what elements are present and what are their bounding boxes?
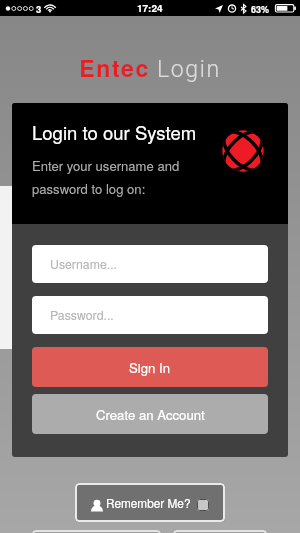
staticText: Login to our System [32, 119, 197, 146]
button[interactable]: Password... [32, 296, 268, 334]
staticText: Enter your username and [32, 156, 180, 175]
staticText: Create an Account [96, 405, 205, 424]
staticText: Username... [50, 255, 117, 273]
staticText: password to log on: [32, 179, 146, 198]
staticText: Password... [50, 306, 114, 324]
button[interactable] [32, 530, 161, 533]
button[interactable]: Create an Account [32, 394, 268, 434]
staticText: Sign In [129, 358, 171, 377]
button[interactable] [173, 530, 267, 533]
button[interactable]: Remember Me? [75, 483, 225, 522]
button[interactable]: Sign In [32, 347, 268, 387]
button[interactable]: Username... [32, 245, 268, 283]
staticText: 17:24 [137, 1, 163, 15]
staticText: Entec Login [0, 51, 300, 84]
staticText: Remember Me? [106, 494, 191, 511]
staticText: 63% [251, 3, 270, 16]
staticText: 3 [36, 2, 42, 16]
